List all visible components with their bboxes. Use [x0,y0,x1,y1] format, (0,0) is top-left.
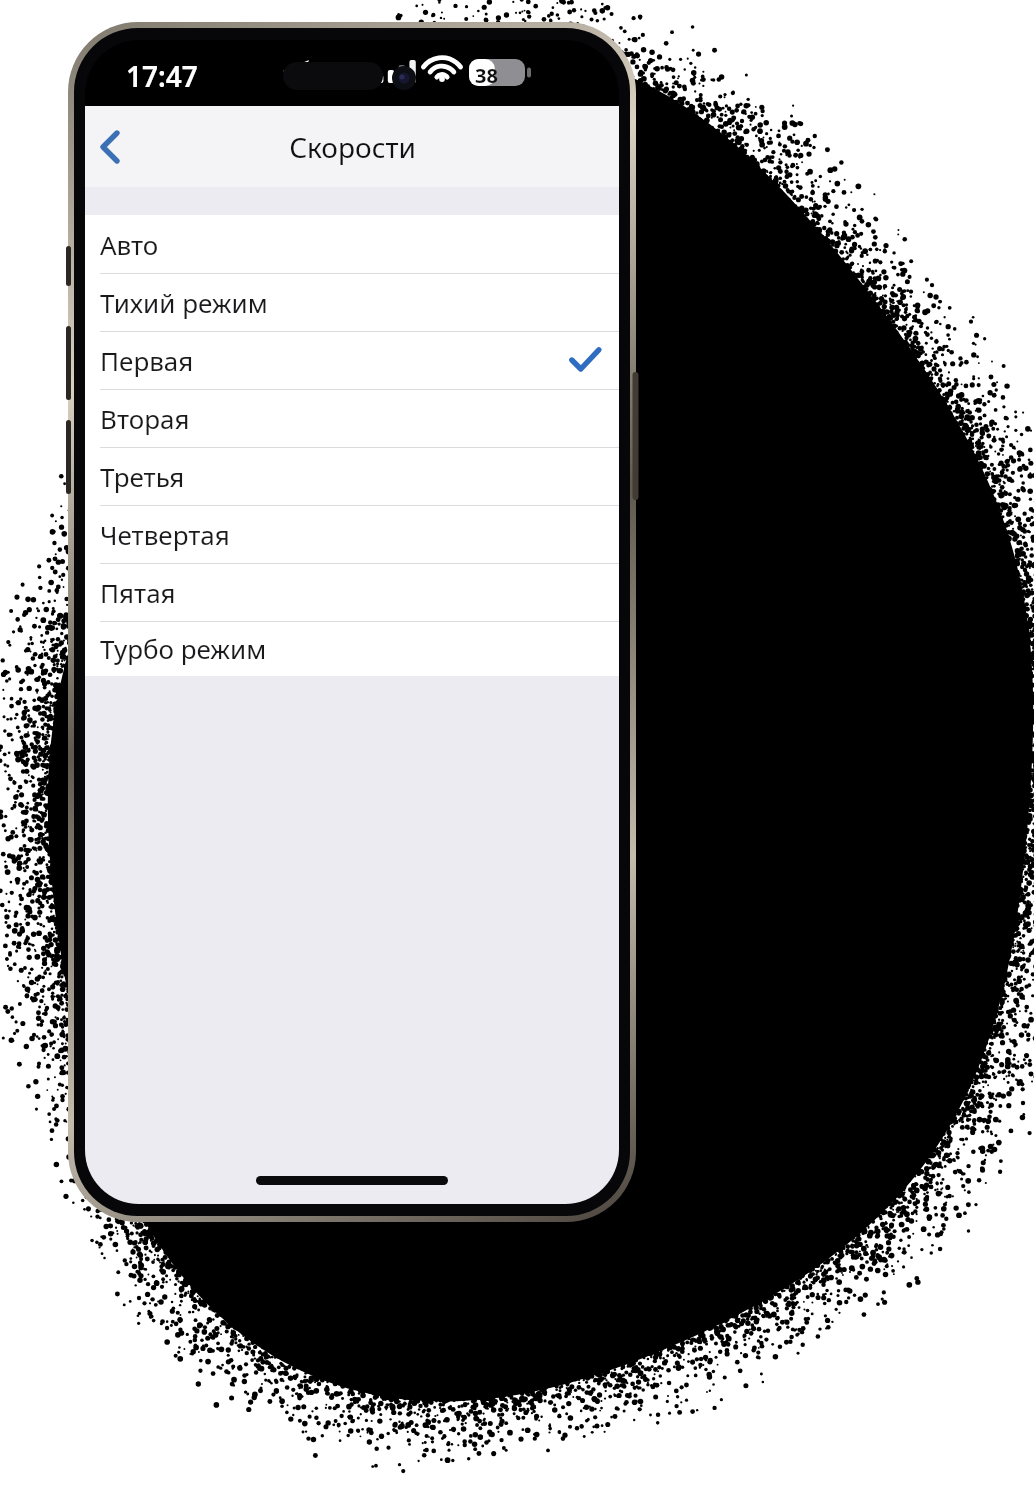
button[interactable]: Турбо режим [85,621,619,676]
button[interactable]: Тихий режим [85,273,619,331]
staticText: 38 [475,62,498,89]
button[interactable]: Первая [85,331,619,389]
staticText: 17:47 [126,57,198,95]
button[interactable]: Вторая [85,389,619,447]
button[interactable]: Авто [85,215,619,273]
button[interactable]: Третья [85,447,619,505]
staticText: Скорости [289,128,416,166]
button[interactable]: Back [85,114,145,180]
staticText: Пятая [100,575,176,610]
staticText: Третья [100,459,185,494]
staticText: Тихий режим [100,285,268,320]
button[interactable]: Четвертая [85,505,619,563]
staticText: Турбо режим [100,631,267,666]
staticText: Вторая [100,401,190,436]
staticText: Четвертая [100,517,230,552]
button[interactable]: Пятая [85,563,619,621]
staticText: Первая [100,343,194,378]
staticText: Авто [100,227,159,262]
